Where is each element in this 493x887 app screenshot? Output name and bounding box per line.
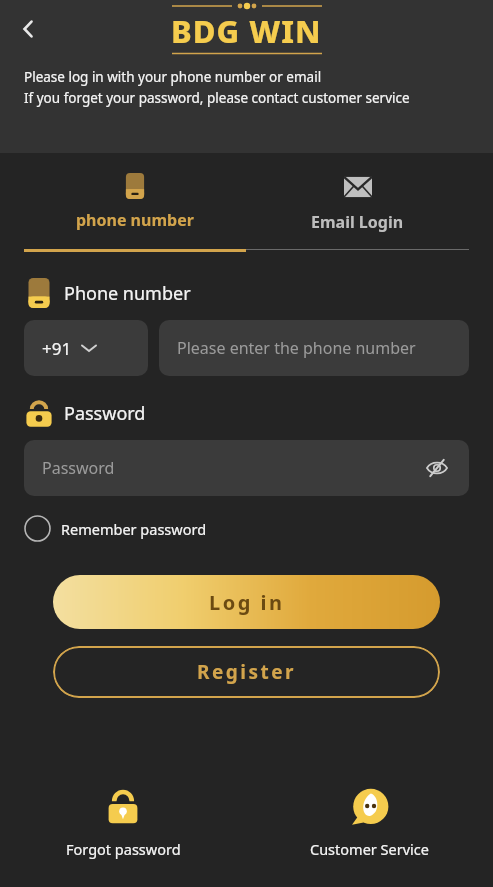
button[interactable]: +91 bbox=[24, 320, 148, 376]
button[interactable]: Forgot password bbox=[0, 784, 246, 863]
button[interactable]: Back bbox=[6, 7, 50, 51]
staticText: Password bbox=[64, 401, 146, 426]
button[interactable]: phone number bbox=[24, 165, 246, 247]
staticText: +91 bbox=[42, 337, 72, 360]
staticText: Remember password bbox=[61, 519, 207, 539]
button[interactable]: Customer Service bbox=[246, 784, 493, 863]
staticText: Password bbox=[42, 457, 423, 479]
button[interactable]: Show password bbox=[423, 454, 451, 482]
staticText: BDG WIN bbox=[171, 10, 322, 52]
button[interactable]: Remember password bbox=[24, 515, 469, 542]
staticText: Forgot password bbox=[66, 839, 181, 859]
staticText: Phone number bbox=[64, 281, 191, 306]
staticText: Log in bbox=[209, 589, 285, 616]
staticText: Please log in with your phone number or … bbox=[24, 68, 322, 86]
staticText: Email Login bbox=[311, 211, 404, 233]
button[interactable]: Please enter the phone number bbox=[159, 320, 469, 376]
staticText: Customer Service bbox=[310, 839, 429, 859]
staticText: If you forget your password, please cont… bbox=[24, 89, 410, 107]
staticText: phone number bbox=[76, 209, 194, 231]
button[interactable]: Register bbox=[53, 646, 440, 698]
button[interactable]: Password bbox=[24, 440, 469, 496]
button[interactable]: Log in bbox=[53, 575, 440, 629]
button[interactable]: Email Login bbox=[246, 165, 469, 249]
staticText: Register bbox=[197, 659, 297, 685]
staticText: Please enter the phone number bbox=[177, 337, 416, 359]
